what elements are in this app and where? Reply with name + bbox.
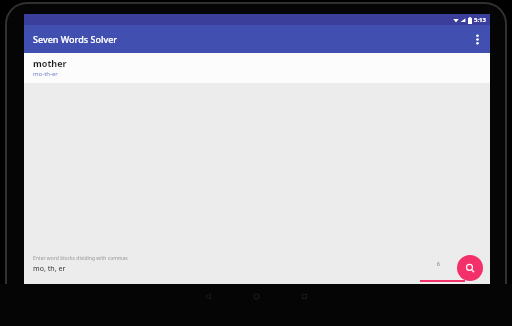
staticText: Enter word blocks dividing with commas [33, 255, 128, 262]
staticText: mother [33, 57, 67, 69]
button[interactable]: mother [24, 53, 490, 83]
button[interactable]: Search [457, 255, 483, 281]
staticText: mo, th, er [33, 264, 66, 274]
staticText: 6 [437, 261, 440, 268]
button[interactable]: More options [464, 26, 490, 52]
button[interactable]: Enter word blocks dividing with commas [33, 255, 128, 274]
staticText: Seven Words Solver [33, 33, 118, 45]
staticText: mo-th-er [33, 70, 58, 78]
staticText: 5:13 [474, 16, 486, 24]
